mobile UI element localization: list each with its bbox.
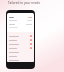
staticText: Tailored to your needs [8,1,40,5]
